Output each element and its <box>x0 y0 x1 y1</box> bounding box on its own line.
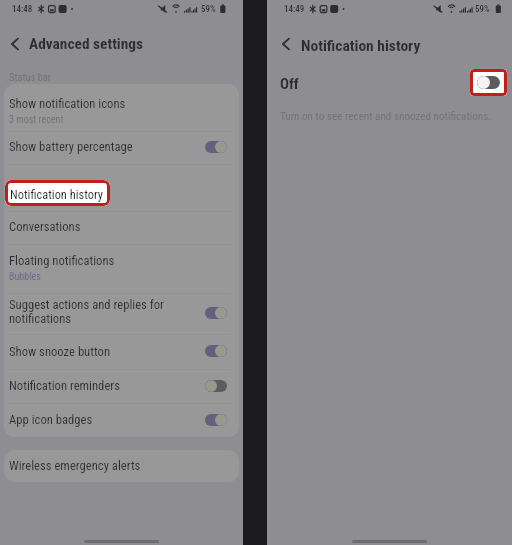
button[interactable]: Notification history <box>4 165 239 211</box>
button[interactable]: Navigate up <box>276 34 296 54</box>
button[interactable]: Notification reminders <box>4 370 239 403</box>
button[interactable]: Floating notifications <box>4 245 239 293</box>
button[interactable]: Navigate up <box>5 34 25 54</box>
staticText: Status bar <box>9 71 51 83</box>
staticText: Show notification icons <box>9 96 126 111</box>
button[interactable]: Off <box>267 67 512 102</box>
staticText: Notification reminders <box>9 378 120 393</box>
staticText: 3 most recent <box>9 114 64 126</box>
button[interactable]: On <box>205 307 227 319</box>
staticText: 59% <box>475 4 490 15</box>
button[interactable]: Turn notification history on <box>470 69 507 96</box>
staticText: 14:48 <box>12 4 33 15</box>
button[interactable]: On <box>205 414 227 426</box>
staticText: Off <box>280 75 299 92</box>
button[interactable]: On <box>205 141 227 153</box>
button[interactable]: Suggest actions and replies for notifica… <box>4 294 239 334</box>
staticText: 59% <box>201 4 216 15</box>
staticText: Wireless emergency alerts <box>9 458 141 473</box>
staticText: Suggest actions and replies for notifica… <box>9 297 164 326</box>
staticText: App icon badges <box>9 412 93 427</box>
staticText: Show battery percentage <box>9 139 133 154</box>
staticText: Bubbles <box>9 271 41 283</box>
button[interactable]: Off <box>205 380 227 392</box>
button[interactable]: Show notification icons <box>4 84 239 131</box>
button[interactable]: App icon badges <box>4 404 239 437</box>
staticText: 14:49 <box>284 4 305 15</box>
button[interactable]: Show battery percentage <box>4 132 239 164</box>
button[interactable]: On <box>205 345 227 357</box>
button[interactable]: Wireless emergency alerts <box>4 450 239 482</box>
staticText: Turn on to see recent and snoozed notifi… <box>280 110 492 123</box>
staticText: Notification history <box>9 181 104 196</box>
staticText: Notification history <box>10 187 104 202</box>
staticText: Show snooze button <box>9 344 111 359</box>
staticText: Conversations <box>9 219 81 234</box>
staticText: Floating notifications <box>9 253 115 268</box>
button[interactable]: Conversations <box>4 212 239 244</box>
button[interactable]: Notification history <box>5 180 110 206</box>
button[interactable]: Show snooze button <box>4 335 239 369</box>
staticText: Notification history <box>301 37 421 55</box>
staticText: Advanced settings <box>29 35 144 53</box>
